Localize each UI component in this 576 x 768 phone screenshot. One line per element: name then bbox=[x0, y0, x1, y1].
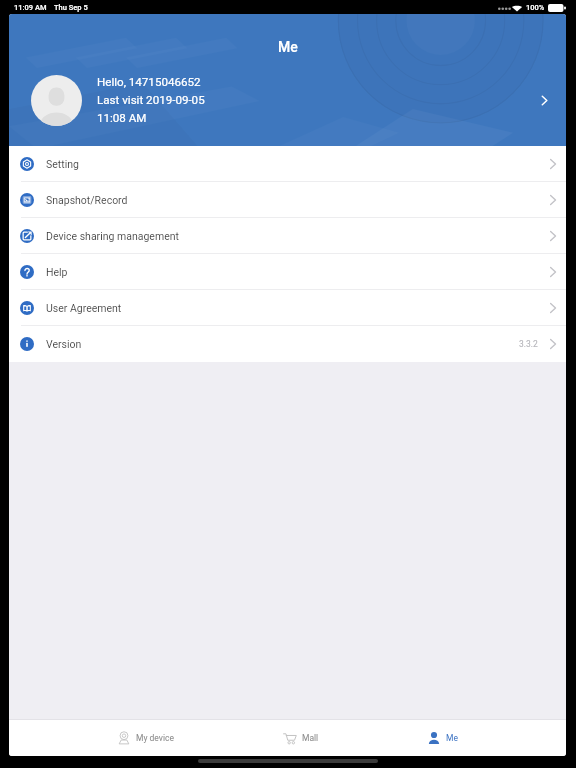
button[interactable]: Me bbox=[427, 720, 458, 756]
button[interactable]: Version bbox=[9, 326, 566, 362]
staticText: 11:08 AM bbox=[97, 111, 147, 125]
staticText: Me bbox=[278, 39, 298, 55]
staticText: Snapshot/Record bbox=[46, 194, 128, 206]
staticText: Setting bbox=[46, 158, 79, 170]
button[interactable]: User Agreement bbox=[9, 290, 566, 326]
staticText: 11:09 AM bbox=[14, 3, 47, 12]
button[interactable]: Hello, 14715046652 bbox=[9, 71, 566, 129]
button[interactable]: Help bbox=[9, 254, 566, 290]
staticText: User Agreement bbox=[46, 302, 122, 314]
staticText: Last visit 2019-09-05 bbox=[97, 93, 205, 107]
button[interactable]: Mall bbox=[283, 720, 319, 756]
staticText: My device bbox=[136, 733, 174, 743]
staticText: Mall bbox=[302, 733, 319, 743]
button[interactable]: Device sharing management bbox=[9, 218, 566, 254]
button[interactable]: My device bbox=[117, 720, 174, 756]
button[interactable]: Setting bbox=[9, 146, 566, 182]
staticText: 100% bbox=[526, 3, 545, 12]
staticText: Version bbox=[46, 338, 82, 350]
staticText: Device sharing management bbox=[46, 230, 179, 242]
button[interactable]: Snapshot/Record bbox=[9, 182, 566, 218]
staticText: 3.3.2 bbox=[519, 339, 538, 349]
staticText: Hello, 14715046652 bbox=[97, 75, 201, 89]
staticText: Me bbox=[446, 733, 458, 743]
staticText: Thu Sep 5 bbox=[54, 3, 88, 12]
staticText: Help bbox=[46, 266, 68, 278]
other: Account details bbox=[538, 94, 551, 107]
